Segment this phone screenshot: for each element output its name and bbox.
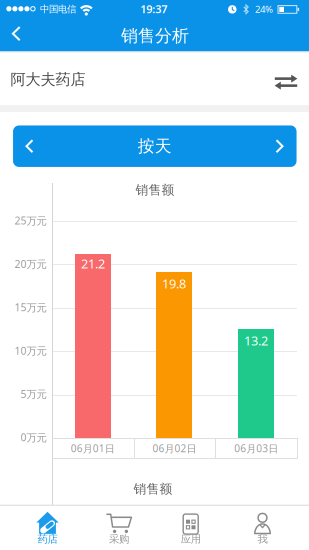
staticText: 06月01日 [71, 441, 115, 455]
staticText: 按天 [138, 136, 172, 157]
staticText: 销售额 [135, 182, 174, 198]
button[interactable]: 我 [226, 505, 298, 549]
staticText: 19:37 [140, 2, 167, 16]
button[interactable]: 返回 [1, 18, 31, 49]
button[interactable]: 下一个 [256, 132, 296, 160]
staticText: 阿大夫药店 [10, 70, 85, 89]
button[interactable]: 药店 [11, 505, 83, 549]
button[interactable]: 按天 [13, 125, 297, 167]
staticText: 06月03日 [234, 441, 278, 455]
staticText: 21.2 [81, 255, 105, 272]
staticText: 10万元 [14, 343, 46, 358]
staticText: 销售分析 [121, 25, 189, 47]
staticText: 24% [255, 2, 273, 16]
staticText: 20万元 [14, 257, 46, 271]
button[interactable]: 阿大夫药店 [0, 53, 309, 105]
staticText: 应用 [181, 532, 201, 545]
staticText: 中国电信 [40, 3, 76, 15]
staticText: 药店 [37, 532, 57, 545]
staticText: 15万元 [14, 300, 46, 314]
staticText: 采购 [109, 532, 129, 545]
staticText: 我 [257, 532, 267, 545]
staticText: 5万元 [20, 387, 46, 401]
button[interactable]: 应用 [155, 505, 227, 549]
button[interactable]: 上一个 [13, 132, 53, 160]
staticText: 13.2 [244, 332, 268, 349]
staticText: 销售额 [133, 481, 172, 497]
staticText: 25万元 [14, 213, 46, 228]
staticText: 06月02日 [152, 441, 196, 455]
staticText: 0万元 [20, 430, 46, 444]
staticText: 19.8 [162, 275, 186, 292]
button[interactable]: 采购 [83, 505, 155, 549]
